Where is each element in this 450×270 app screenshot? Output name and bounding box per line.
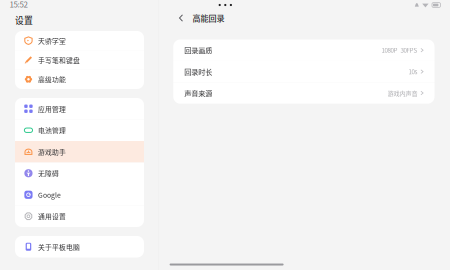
staticText: 声音来源 — [184, 88, 212, 98]
staticText: 15:52 — [9, 0, 27, 10]
staticText: Google — [38, 190, 61, 200]
staticText: 手写笔和键盘 — [38, 55, 80, 65]
staticText: 回录画质 — [184, 45, 212, 55]
staticText: 1080P 30FPS — [381, 46, 417, 55]
staticText: 应用管理 — [38, 104, 66, 114]
button[interactable]: Back — [175, 10, 187, 26]
staticText: 10s — [408, 67, 417, 76]
button[interactable]: 电池管理 — [15, 119, 144, 141]
staticText: 设置 — [15, 14, 33, 26]
staticText: 回录时长 — [184, 66, 212, 77]
button[interactable]: 手写笔和键盘 — [15, 50, 144, 70]
staticText: 无障碍 — [38, 168, 59, 178]
button[interactable]: 通用设置 — [15, 205, 144, 227]
button[interactable]: 回录时长 — [173, 61, 434, 82]
staticText: 游戏助手 — [38, 147, 66, 157]
button[interactable]: 回录画质 — [173, 39, 434, 61]
staticText: 通用设置 — [38, 211, 66, 221]
button[interactable]: 关于平板电脑 — [15, 236, 144, 257]
button[interactable]: 无障碍 — [15, 162, 144, 184]
staticText: 高级功能 — [38, 74, 66, 84]
button[interactable]: 声音来源 — [173, 82, 434, 104]
button[interactable]: Google — [15, 184, 144, 205]
button[interactable]: 游戏助手 — [15, 141, 144, 162]
button[interactable]: 高级功能 — [15, 70, 144, 89]
staticText: 关于平板电脑 — [38, 242, 80, 252]
staticText: 高能回录 — [192, 12, 224, 24]
staticText: 游戏内声音 — [387, 89, 417, 97]
staticText: 电池管理 — [38, 125, 66, 135]
button[interactable]: 应用管理 — [15, 98, 144, 119]
staticText: 天骄学堂 — [38, 36, 66, 45]
button[interactable]: 天骄学堂 — [15, 31, 144, 50]
